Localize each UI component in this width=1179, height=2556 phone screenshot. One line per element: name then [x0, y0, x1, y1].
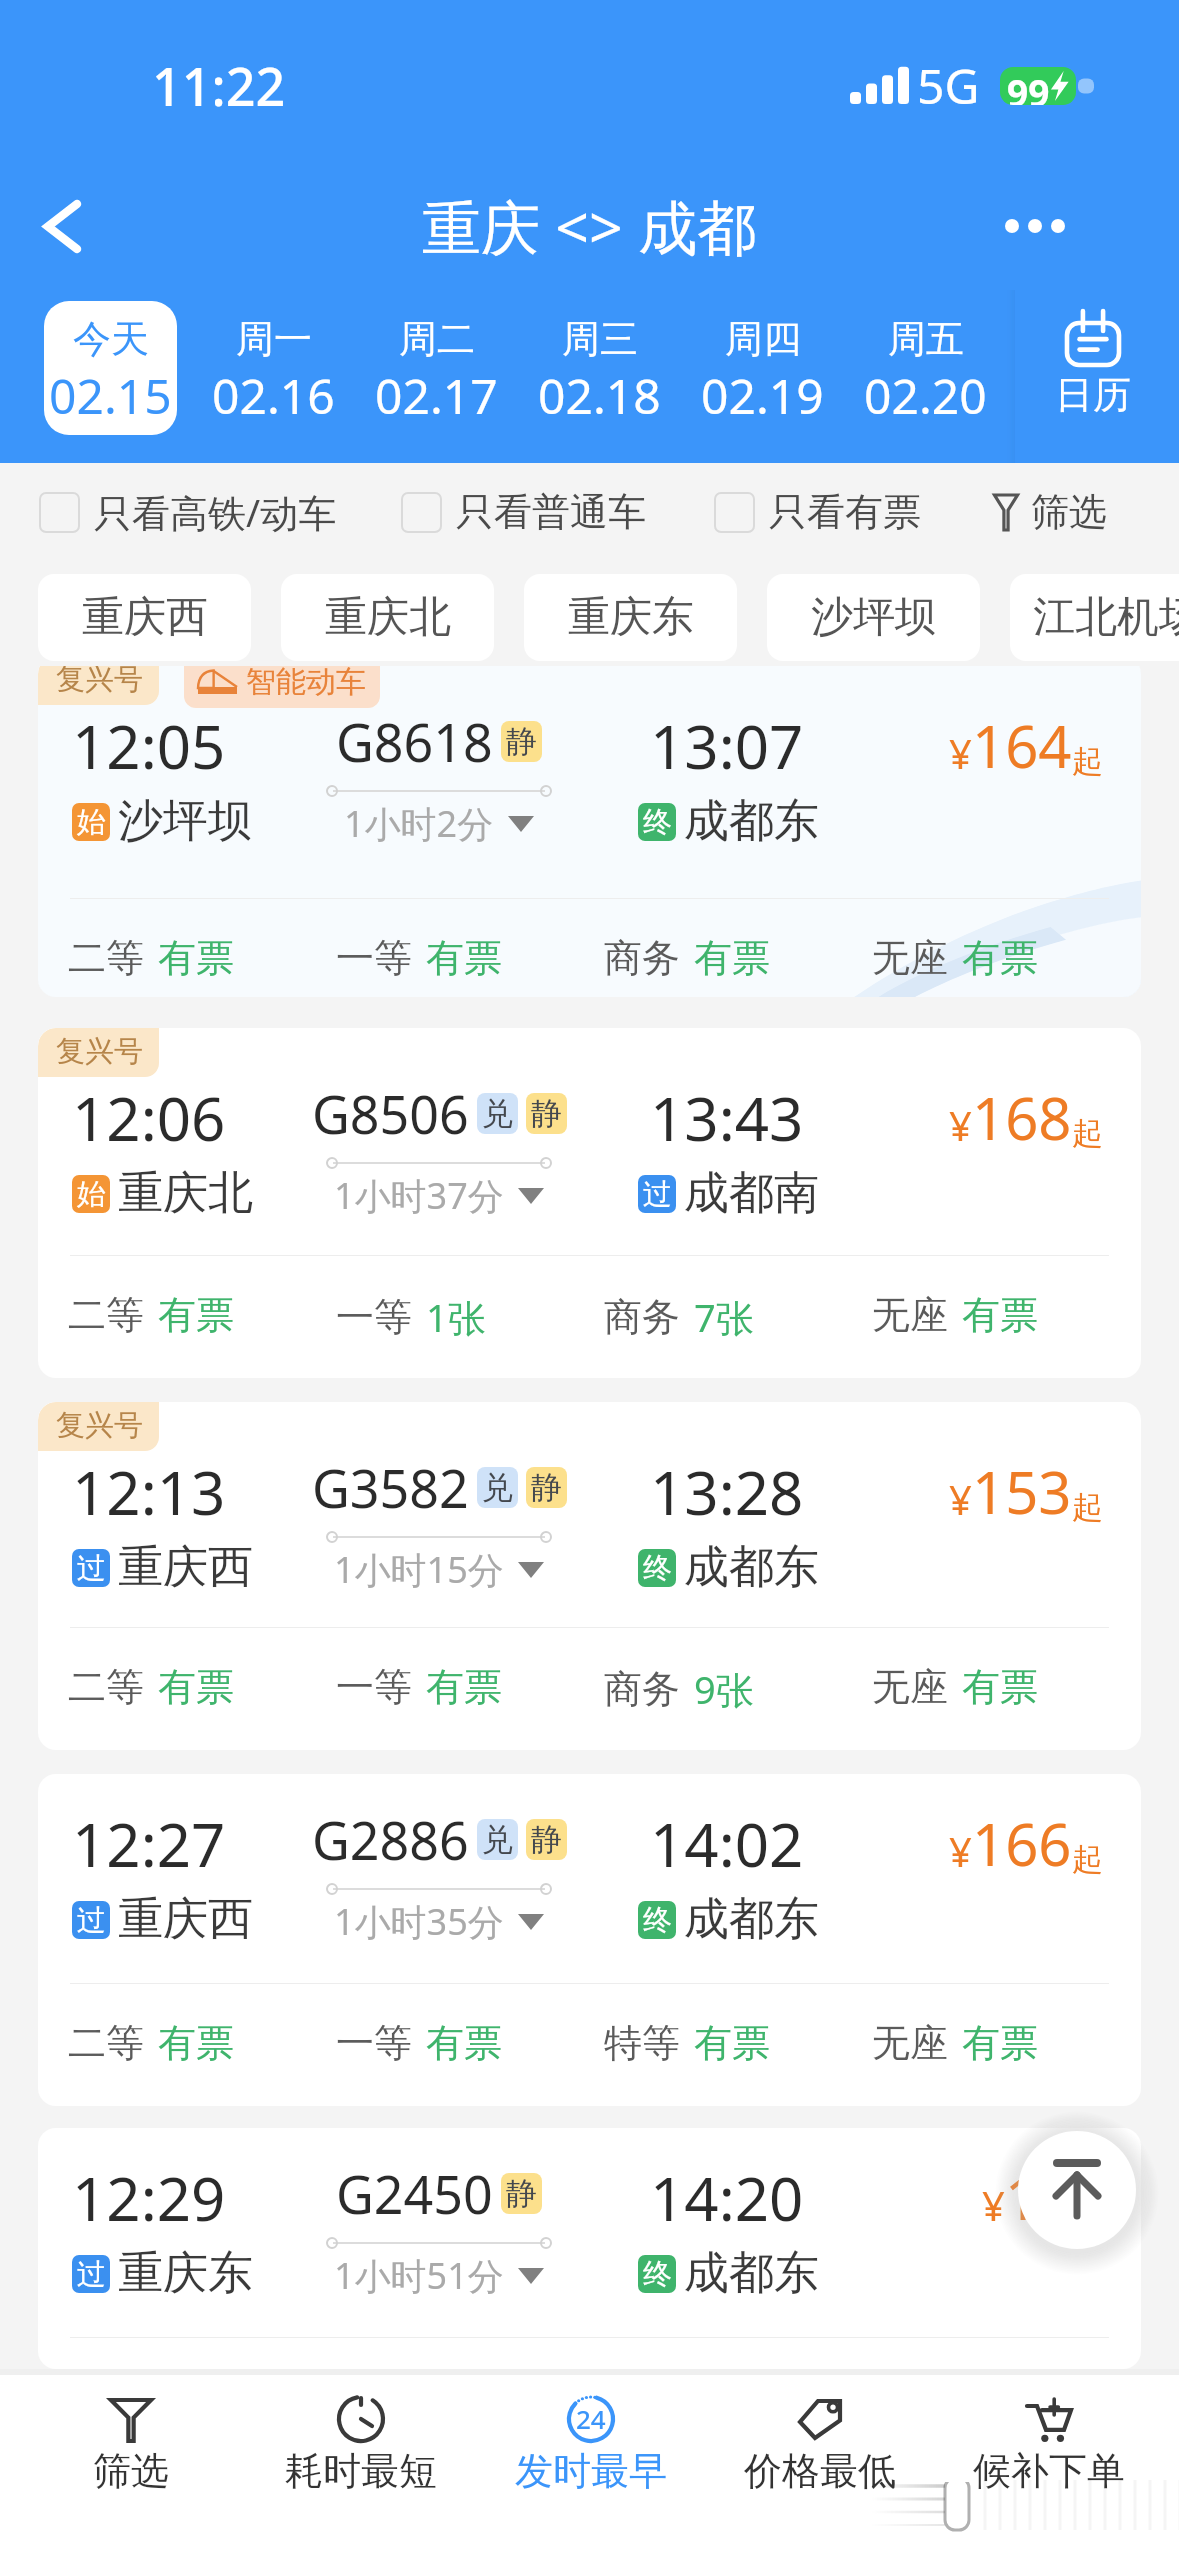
staticText: G2450 — [336, 2158, 493, 2229]
staticText: 有票 — [962, 1663, 1038, 1711]
button[interactable]: 12:29 — [38, 2128, 1141, 2369]
staticText: 99 — [1007, 67, 1050, 105]
staticText: 沙坪坝 — [811, 591, 937, 644]
button[interactable]: 今天 — [44, 301, 177, 435]
staticText: 12:13 — [72, 1451, 226, 1533]
staticText: 1张 — [426, 1291, 486, 1343]
staticText: G8506 — [312, 1078, 469, 1149]
staticText: 沙坪坝 — [118, 793, 253, 850]
staticText: 成都东 — [684, 2245, 819, 2302]
staticText: 7张 — [694, 1291, 754, 1343]
staticText: 有票 — [962, 934, 1038, 982]
staticText: 发时最早 — [515, 2447, 667, 2495]
staticText: 成都东 — [684, 793, 819, 850]
staticText: G8618 — [336, 706, 493, 777]
staticText: 重庆东 — [118, 2245, 253, 2302]
button[interactable]: 周五 — [859, 301, 992, 435]
staticText: 1小时51分 — [334, 2251, 504, 2300]
staticText: 13:07 — [650, 705, 804, 787]
button[interactable]: 24 — [476, 2375, 705, 2556]
staticText: 只看高铁/动车 — [94, 486, 337, 538]
staticText: 一等 — [336, 2019, 412, 2067]
staticText: 重庆北 — [325, 591, 451, 644]
staticText: 1小时15分 — [334, 1545, 504, 1594]
button[interactable]: 复兴号 — [38, 666, 1141, 997]
button[interactable]: 只看高铁/动车 — [39, 486, 337, 538]
staticText: 无座 — [872, 1291, 948, 1339]
staticText: 始 — [77, 804, 106, 841]
staticText: 有票 — [158, 2019, 234, 2067]
button[interactable]: 周一 — [207, 301, 340, 435]
button[interactable]: 筛选 — [16, 2375, 246, 2556]
staticText: 今天 — [73, 315, 149, 363]
staticText: 起 — [1072, 1840, 1103, 1879]
staticText: 有票 — [694, 934, 770, 982]
staticText: 成都东 — [684, 1891, 819, 1948]
button[interactable]: 重庆西 — [38, 574, 251, 661]
staticText: 过 — [77, 1902, 106, 1939]
staticText: 19 — [1005, 2158, 1072, 2237]
staticText: 12:06 — [72, 1077, 226, 1159]
button[interactable]: 日历 — [1007, 301, 1179, 474]
staticText: 周四 — [725, 315, 801, 363]
staticText: 12:27 — [72, 1803, 226, 1885]
button[interactable]: 周四 — [696, 301, 829, 435]
button[interactable]: Back to top — [1018, 2131, 1136, 2249]
button[interactable]: 江北机场 — [1010, 574, 1179, 661]
staticText: 江北机场 — [1033, 591, 1179, 644]
button[interactable]: 复兴号 — [38, 1028, 1141, 1378]
staticText: 一等 — [336, 1663, 412, 1711]
staticText: 日历 — [1055, 371, 1131, 419]
staticText: 一等 — [336, 1293, 412, 1341]
button[interactable]: 耗时最短 — [246, 2375, 476, 2556]
staticText: ¥ — [982, 2178, 1005, 2232]
staticText: 周一 — [236, 315, 312, 363]
staticText: 一等 — [336, 934, 412, 982]
button[interactable]: 周三 — [533, 301, 666, 435]
button[interactable]: 只看有票 — [714, 488, 921, 536]
staticText: 有票 — [694, 2019, 770, 2067]
staticText: 重庆西 — [118, 1539, 253, 1596]
staticText: 只看普通车 — [456, 488, 646, 536]
button[interactable]: 12:27 — [38, 1774, 1141, 2106]
staticText: 11:22 — [152, 50, 286, 121]
button[interactable]: More options — [985, 176, 1085, 276]
staticText: 9张 — [694, 1663, 754, 1715]
staticText: 商务 — [604, 1293, 680, 1341]
button[interactable]: 筛选 — [993, 488, 1107, 536]
staticText: 无座 — [872, 2019, 948, 2067]
staticText: 无座 — [872, 934, 948, 982]
button[interactable]: 候补下单 — [934, 2375, 1163, 2556]
staticText: G3582 — [312, 1452, 469, 1523]
button[interactable]: 只看普通车 — [401, 488, 646, 536]
staticText: 筛选 — [93, 2447, 169, 2495]
staticText: 二等 — [68, 2019, 144, 2067]
staticText: 智能动车 — [246, 666, 366, 701]
staticText: 价格最低 — [744, 2447, 896, 2495]
staticText: 只看有票 — [769, 488, 921, 536]
staticText: 24 — [576, 2401, 606, 2436]
staticText: 02.18 — [538, 363, 661, 428]
staticText: 静 — [531, 1094, 562, 1133]
staticText: 二等 — [68, 934, 144, 982]
staticText: 过 — [643, 1176, 672, 1213]
staticText: 重庆东 — [568, 591, 694, 644]
staticText: 13:43 — [650, 1077, 804, 1159]
staticText: 重庆 <> 成都 — [422, 186, 757, 267]
staticText: 有票 — [962, 1291, 1038, 1339]
button[interactable]: 周二 — [370, 301, 503, 435]
button[interactable]: Back — [12, 176, 112, 276]
staticText: G2886 — [312, 1804, 469, 1875]
button[interactable]: 重庆北 — [281, 574, 494, 661]
staticText: 重庆西 — [82, 591, 208, 644]
button[interactable]: 沙坪坝 — [767, 574, 980, 661]
staticText: 周二 — [399, 315, 475, 363]
staticText: 153 — [972, 1452, 1072, 1531]
staticText: 终 — [643, 1902, 672, 1939]
button[interactable]: 复兴号 — [38, 1402, 1141, 1750]
button[interactable]: 重庆东 — [524, 574, 737, 661]
staticText: 有票 — [962, 2019, 1038, 2067]
button[interactable]: 价格最低 — [705, 2375, 934, 2556]
staticText: 周三 — [562, 315, 638, 363]
staticText: 有票 — [158, 1291, 234, 1339]
